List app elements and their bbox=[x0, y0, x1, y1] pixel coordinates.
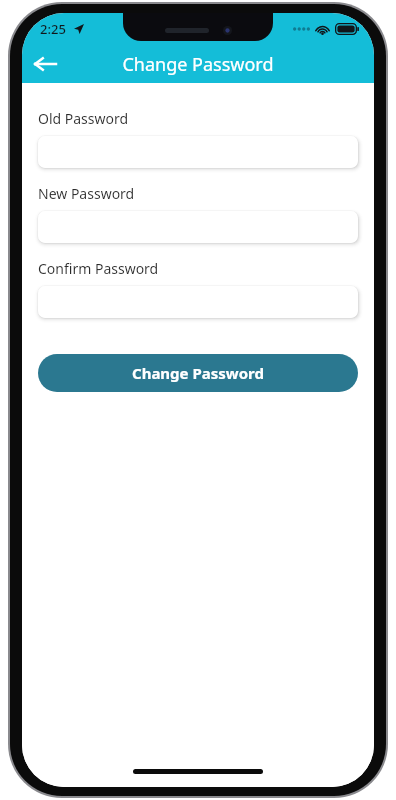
staticText: Change Password bbox=[122, 52, 274, 77]
staticText: New Password bbox=[38, 184, 135, 203]
staticText: Old Password bbox=[38, 109, 129, 128]
staticText: Confirm Password bbox=[38, 259, 159, 278]
staticText: 2:25 bbox=[40, 20, 66, 38]
staticText: Change Password bbox=[132, 363, 264, 383]
button[interactable]: Change Password bbox=[38, 354, 358, 392]
button[interactable]: Back bbox=[22, 45, 68, 83]
